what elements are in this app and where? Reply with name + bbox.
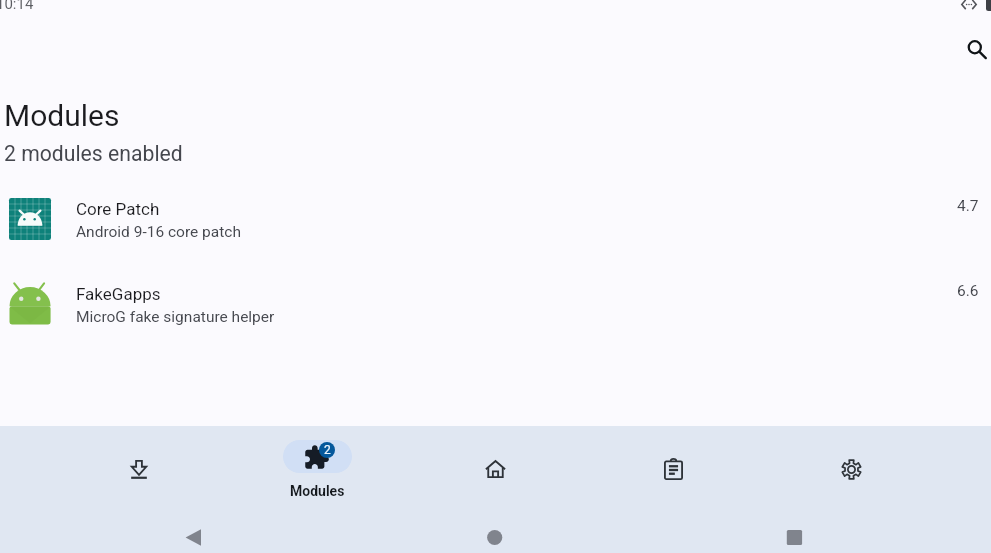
staticText: 10:14 (0, 0, 34, 13)
button[interactable]: Core Patch (0, 177, 991, 262)
button[interactable]: FakeGapps (0, 262, 991, 347)
staticText: Modules (4, 98, 120, 133)
staticText: 4.7 (957, 197, 979, 215)
staticText: Android 9-16 core patch (76, 223, 241, 241)
staticText: 2 (324, 443, 331, 457)
button[interactable]: Download (49, 426, 228, 512)
button[interactable]: Modules (228, 426, 406, 512)
button[interactable]: Settings (762, 426, 940, 512)
staticText: FakeGapps (76, 284, 161, 304)
button[interactable]: Search (953, 26, 991, 74)
staticText: 2 modules enabled (4, 141, 183, 166)
button[interactable]: Home (406, 426, 584, 512)
staticText: Core Patch (76, 199, 160, 219)
staticText: Modules (290, 483, 345, 499)
button[interactable]: Install logs (584, 426, 762, 512)
staticText: 6.6 (957, 282, 979, 300)
staticText: MicroG fake signature helper (76, 308, 275, 326)
